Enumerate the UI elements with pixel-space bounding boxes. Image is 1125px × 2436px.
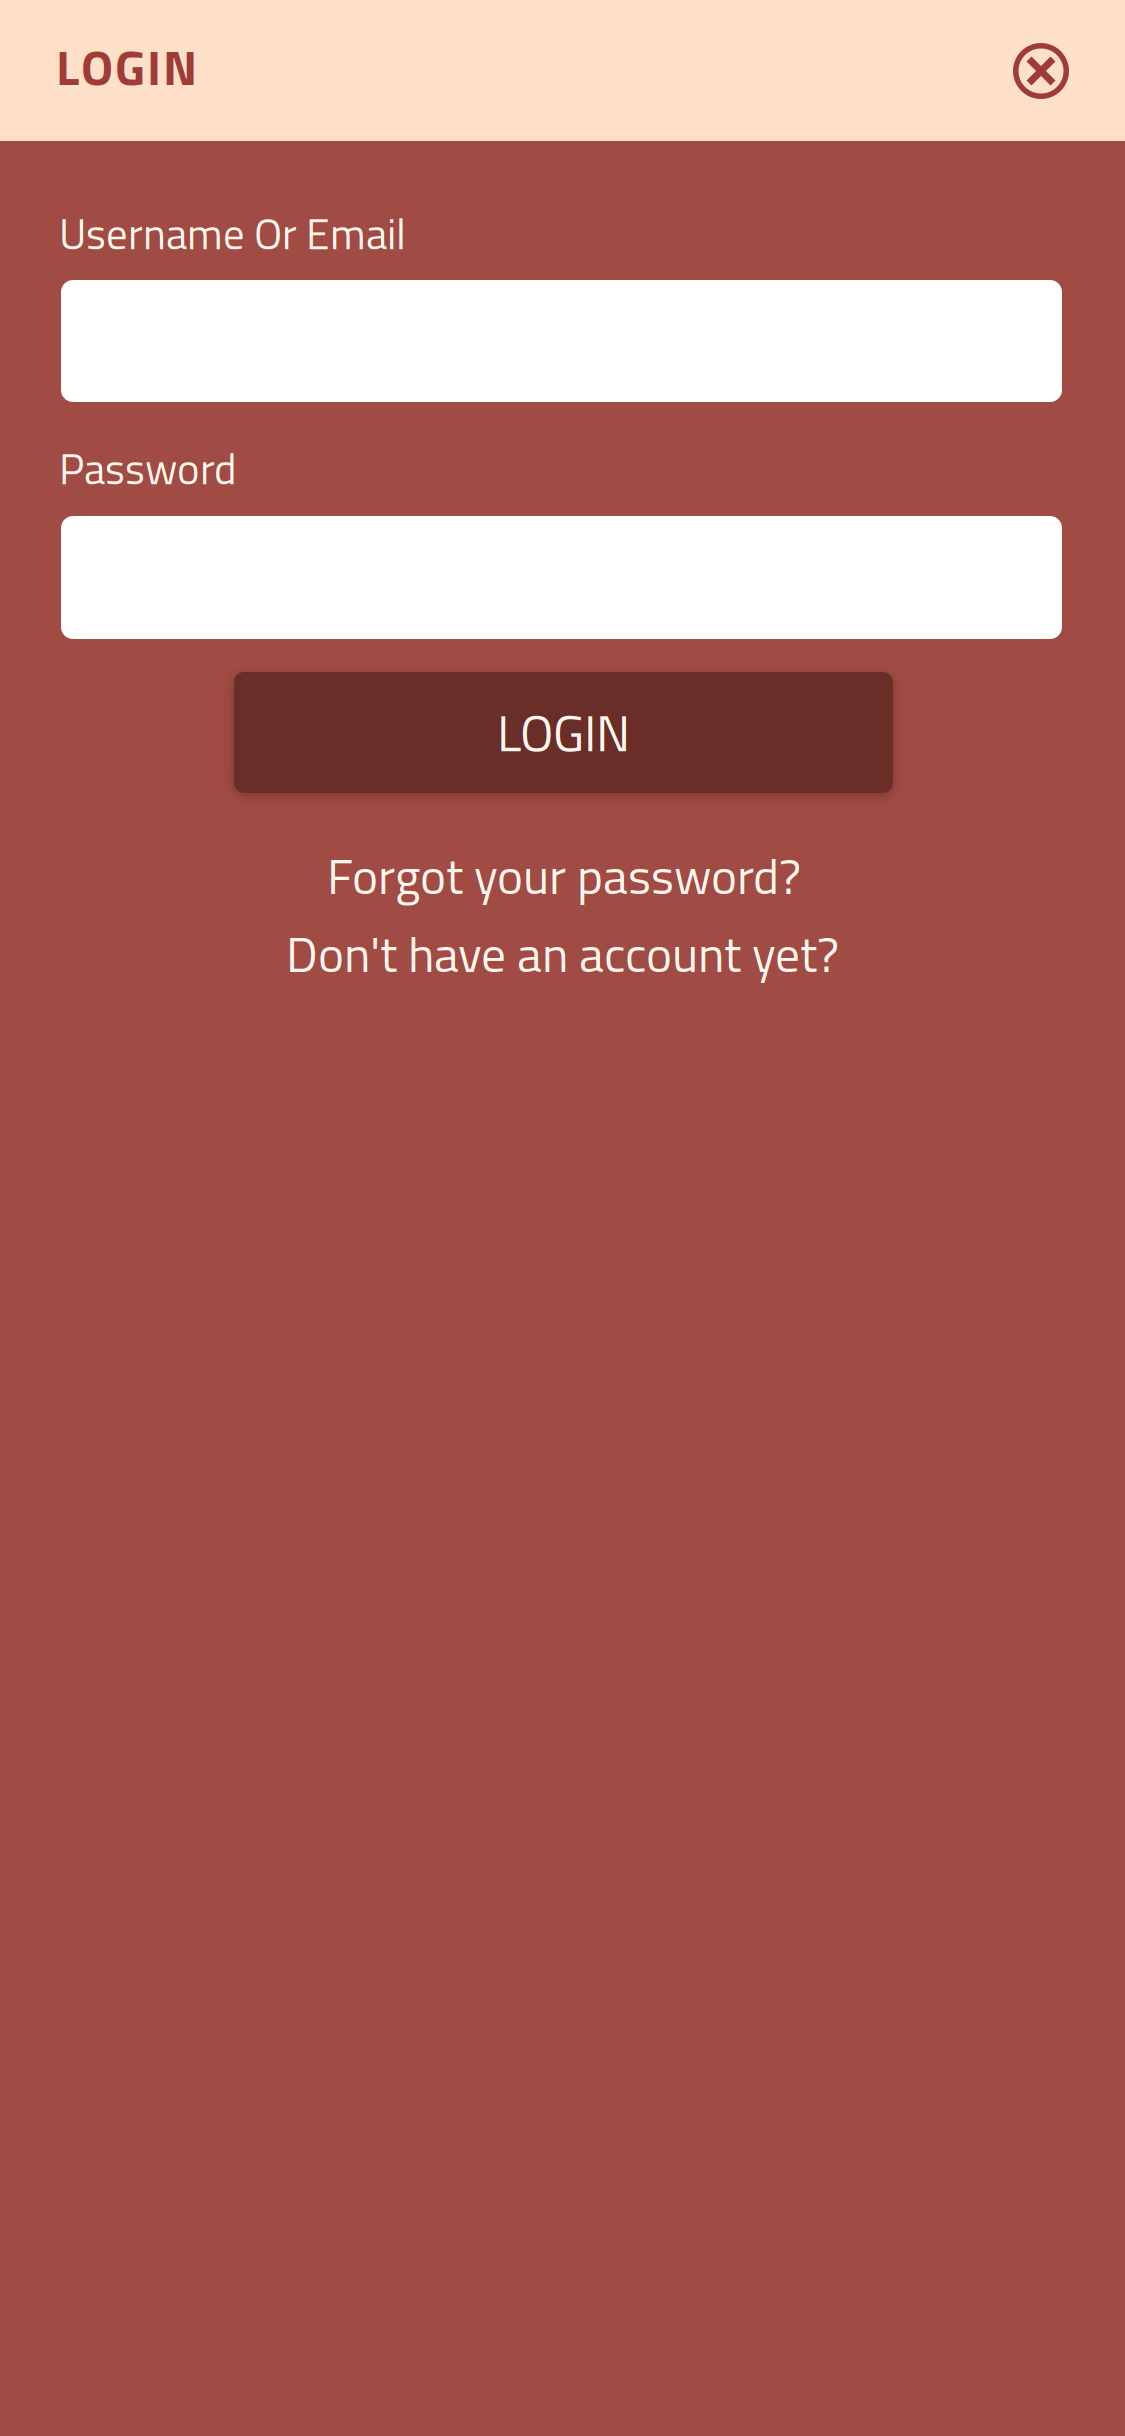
staticText: Forgot your password? bbox=[327, 838, 801, 913]
staticText: LOGIN bbox=[56, 29, 197, 104]
button[interactable]: Don't have an account yet? bbox=[286, 916, 839, 991]
button[interactable]: LOGIN bbox=[234, 672, 893, 793]
staticText: LOGIN bbox=[497, 694, 630, 771]
button[interactable]: Forgot your password? bbox=[327, 838, 801, 913]
staticText: Username Or Email bbox=[59, 201, 406, 266]
staticText: Don't have an account yet? bbox=[286, 916, 839, 991]
staticText: Password bbox=[59, 436, 237, 501]
button[interactable]: Close bbox=[986, 16, 1096, 126]
